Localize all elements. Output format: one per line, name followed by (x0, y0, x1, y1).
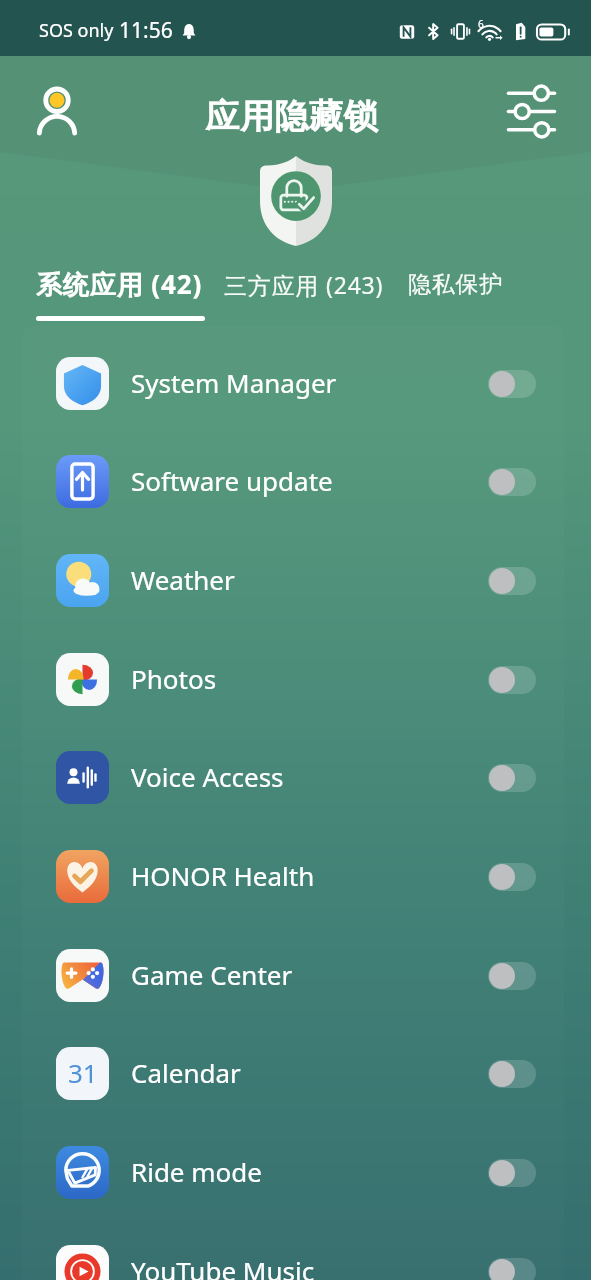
staticText: 11:56 (119, 16, 173, 45)
staticText: System Manager (131, 365, 337, 400)
staticText: SOS only (39, 18, 119, 43)
staticText: Software update (131, 463, 333, 498)
button[interactable]: Toggle app hide (488, 567, 536, 595)
staticText: 系统应用 (42) (36, 266, 203, 302)
staticText: Ride mode (131, 1154, 262, 1189)
staticText: 三方应用 (243) (224, 269, 384, 300)
staticText: 6 (478, 17, 484, 31)
button[interactable]: Toggle app hide (488, 666, 536, 694)
button[interactable]: System Manager (22, 334, 564, 433)
button[interactable]: Voice Access (22, 728, 564, 827)
staticText: 应用隐藏锁 (205, 95, 378, 138)
staticText: Game Center (131, 957, 293, 992)
staticText: YouTube Music (131, 1253, 315, 1280)
button[interactable]: Profile (27, 81, 87, 141)
staticText: 隐私保护 (408, 270, 504, 299)
button[interactable]: Toggle app hide (488, 1159, 536, 1187)
staticText: Photos (131, 661, 217, 696)
button[interactable]: HONOR Health (22, 827, 564, 926)
button[interactable]: 三方应用 (243) (224, 269, 384, 300)
button[interactable]: Toggle app hide (488, 764, 536, 792)
staticText: Calendar (131, 1055, 241, 1090)
button[interactable]: Weather (22, 531, 564, 630)
button[interactable]: YouTube Music (22, 1222, 564, 1280)
staticText: 31 (68, 1055, 98, 1090)
staticText: Voice Access (131, 759, 284, 794)
button[interactable]: Toggle app hide (488, 370, 536, 398)
button[interactable]: Ride mode (22, 1123, 564, 1222)
button[interactable]: Game Center (22, 926, 564, 1025)
button[interactable]: Software update (22, 432, 564, 531)
button[interactable]: Toggle app hide (488, 863, 536, 891)
staticText: HONOR Health (131, 858, 315, 893)
button[interactable]: Toggle app hide (488, 962, 536, 990)
button[interactable]: Photos (22, 630, 564, 729)
button[interactable]: 系统应用 (42) (36, 266, 203, 302)
button[interactable]: Toggle app hide (488, 1060, 536, 1088)
button[interactable]: Toggle app hide (488, 1258, 536, 1280)
button[interactable]: 31 (22, 1024, 564, 1123)
button[interactable]: Settings (502, 82, 560, 140)
button[interactable]: 隐私保护 (408, 270, 504, 299)
button[interactable]: Toggle app hide (488, 468, 536, 496)
staticText: Weather (131, 562, 235, 597)
